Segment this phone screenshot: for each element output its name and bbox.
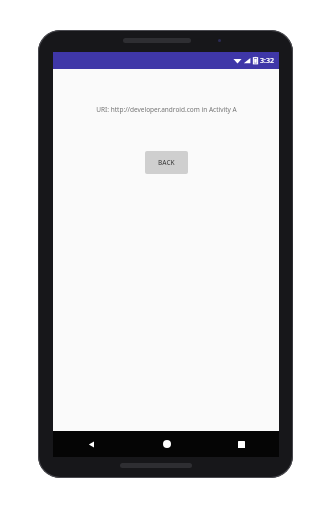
staticText: BACK: [158, 158, 175, 167]
button[interactable]: Back: [53, 431, 129, 457]
staticText: URI: http://developer.android.com in Act…: [96, 105, 237, 114]
staticText: 3:32: [260, 56, 274, 66]
button[interactable]: Recent apps: [204, 431, 279, 457]
button[interactable]: BACK: [145, 151, 188, 174]
button[interactable]: Home: [129, 431, 204, 457]
